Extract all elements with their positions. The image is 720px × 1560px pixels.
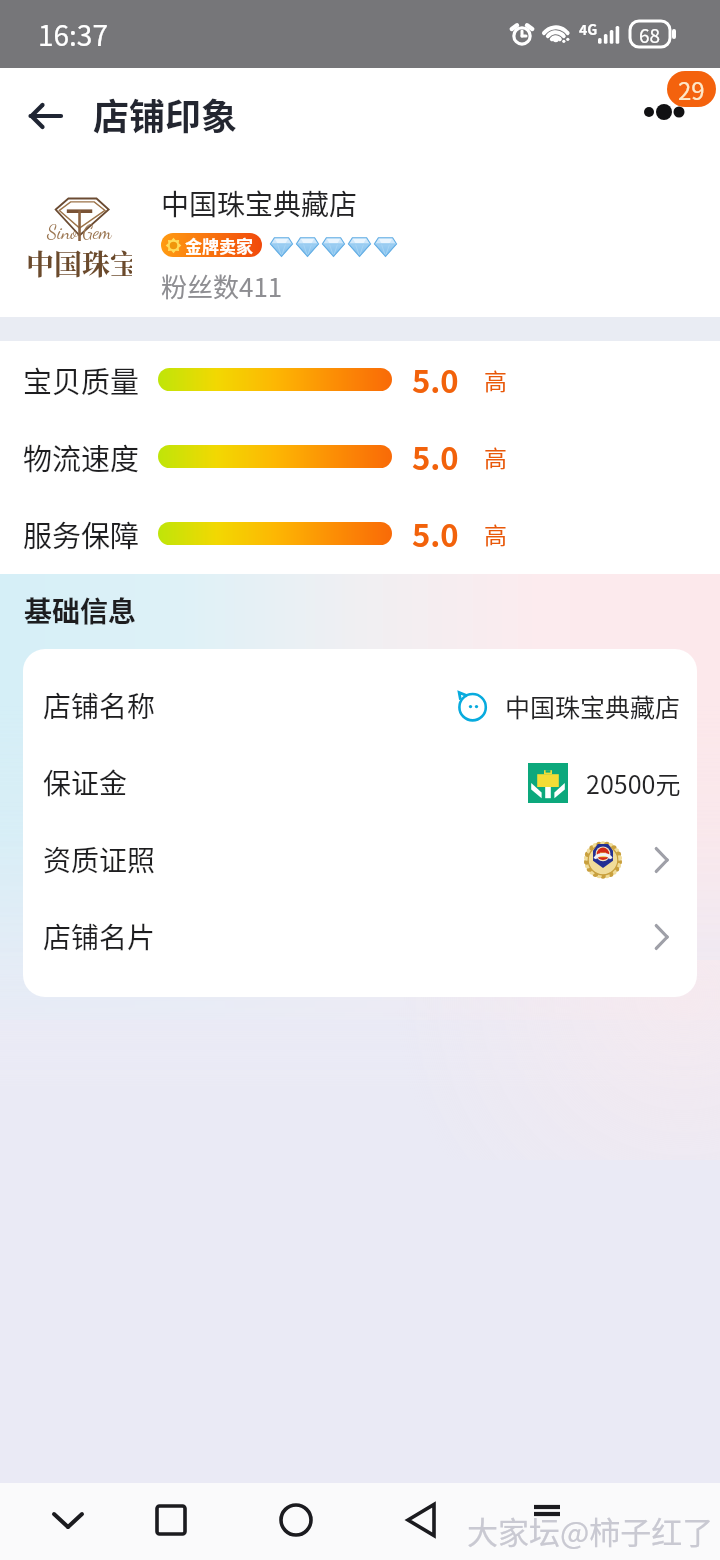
staticText: 服务保障 (23, 513, 140, 555)
staticText: 5.0 (412, 357, 459, 402)
staticText: 中国珠宝典藏店 (505, 688, 681, 724)
staticText: Sino Gem (47, 221, 112, 244)
button[interactable]: Recents (137, 1486, 205, 1554)
staticText: 店铺名片 (43, 916, 156, 957)
staticText: 粉丝数411 (161, 267, 283, 305)
staticText: 5.0 (412, 434, 459, 479)
staticText: 20500元 (586, 765, 681, 801)
staticText: 店铺印象 (93, 88, 238, 140)
button[interactable]: 店铺名称 (23, 667, 697, 744)
staticText: 金牌卖家 (185, 233, 253, 257)
staticText: 高 (484, 363, 507, 396)
button[interactable]: Collapse keyboard (34, 1486, 102, 1554)
staticText: 宝贝质量 (23, 359, 140, 401)
staticText: 4G (579, 19, 598, 39)
staticText: 29 (678, 72, 705, 107)
button[interactable]: Home (262, 1486, 330, 1554)
button[interactable]: Back (16, 87, 74, 145)
button[interactable]: Back (387, 1486, 455, 1554)
button[interactable]: 店铺名片 (23, 898, 697, 975)
staticText: 中国珠宝典藏店 (161, 183, 358, 224)
staticText: 物流速度 (23, 436, 140, 478)
button[interactable]: 资质证照 (23, 821, 697, 898)
staticText: 高 (484, 440, 507, 473)
button[interactable]: 保证金 (23, 744, 697, 821)
staticText: 资质证照 (43, 839, 156, 880)
staticText: 16:37 (38, 14, 108, 55)
button[interactable]: Menu (513, 1486, 581, 1554)
staticText: 5.0 (412, 511, 459, 556)
staticText: 高 (484, 517, 507, 550)
button[interactable]: More options (635, 92, 693, 140)
staticText: 店铺名称 (43, 685, 156, 726)
staticText: 保证金 (43, 762, 128, 803)
staticText: 大家坛@柿子红了 (467, 1508, 714, 1553)
staticText: 中国珠宝 (26, 243, 132, 283)
staticText: 基础信息 (24, 590, 137, 631)
staticText: 68 (639, 21, 661, 47)
